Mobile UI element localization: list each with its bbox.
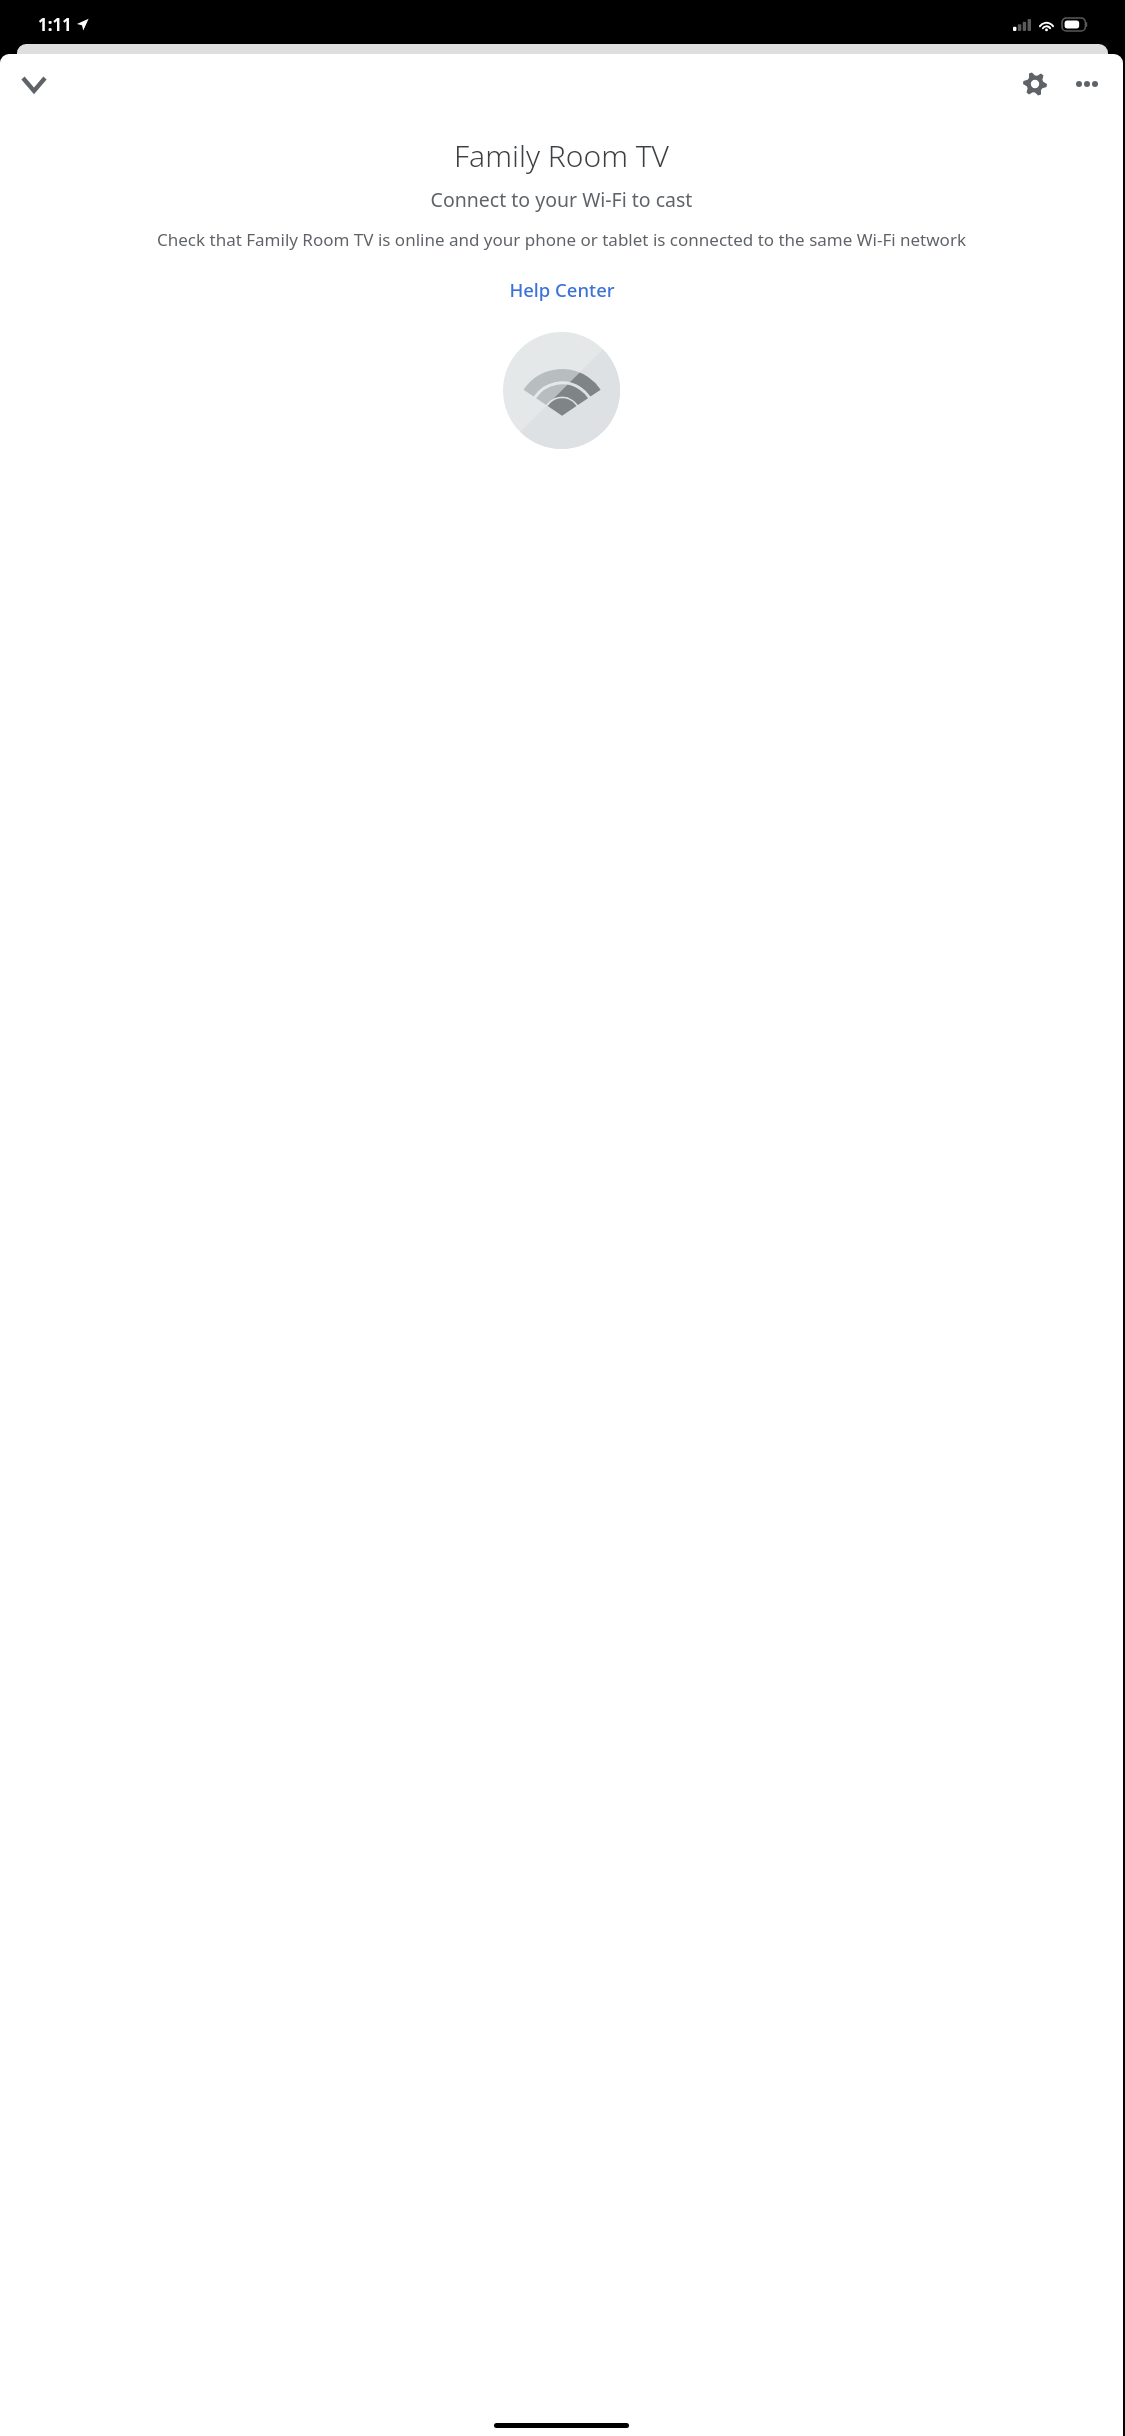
button[interactable]: More options	[1061, 58, 1113, 110]
staticText: 1:11	[38, 13, 72, 36]
staticText: Help Center	[509, 277, 615, 302]
staticText: Family Room TV	[0, 135, 1123, 176]
staticText: Connect to your Wi-Fi to cast	[0, 186, 1123, 213]
button[interactable]: Settings	[1009, 58, 1061, 110]
button[interactable]: Help Center	[501, 273, 623, 306]
staticText: Check that Family Room TV is online and …	[32, 228, 1091, 251]
button[interactable]: Collapse	[10, 60, 58, 108]
